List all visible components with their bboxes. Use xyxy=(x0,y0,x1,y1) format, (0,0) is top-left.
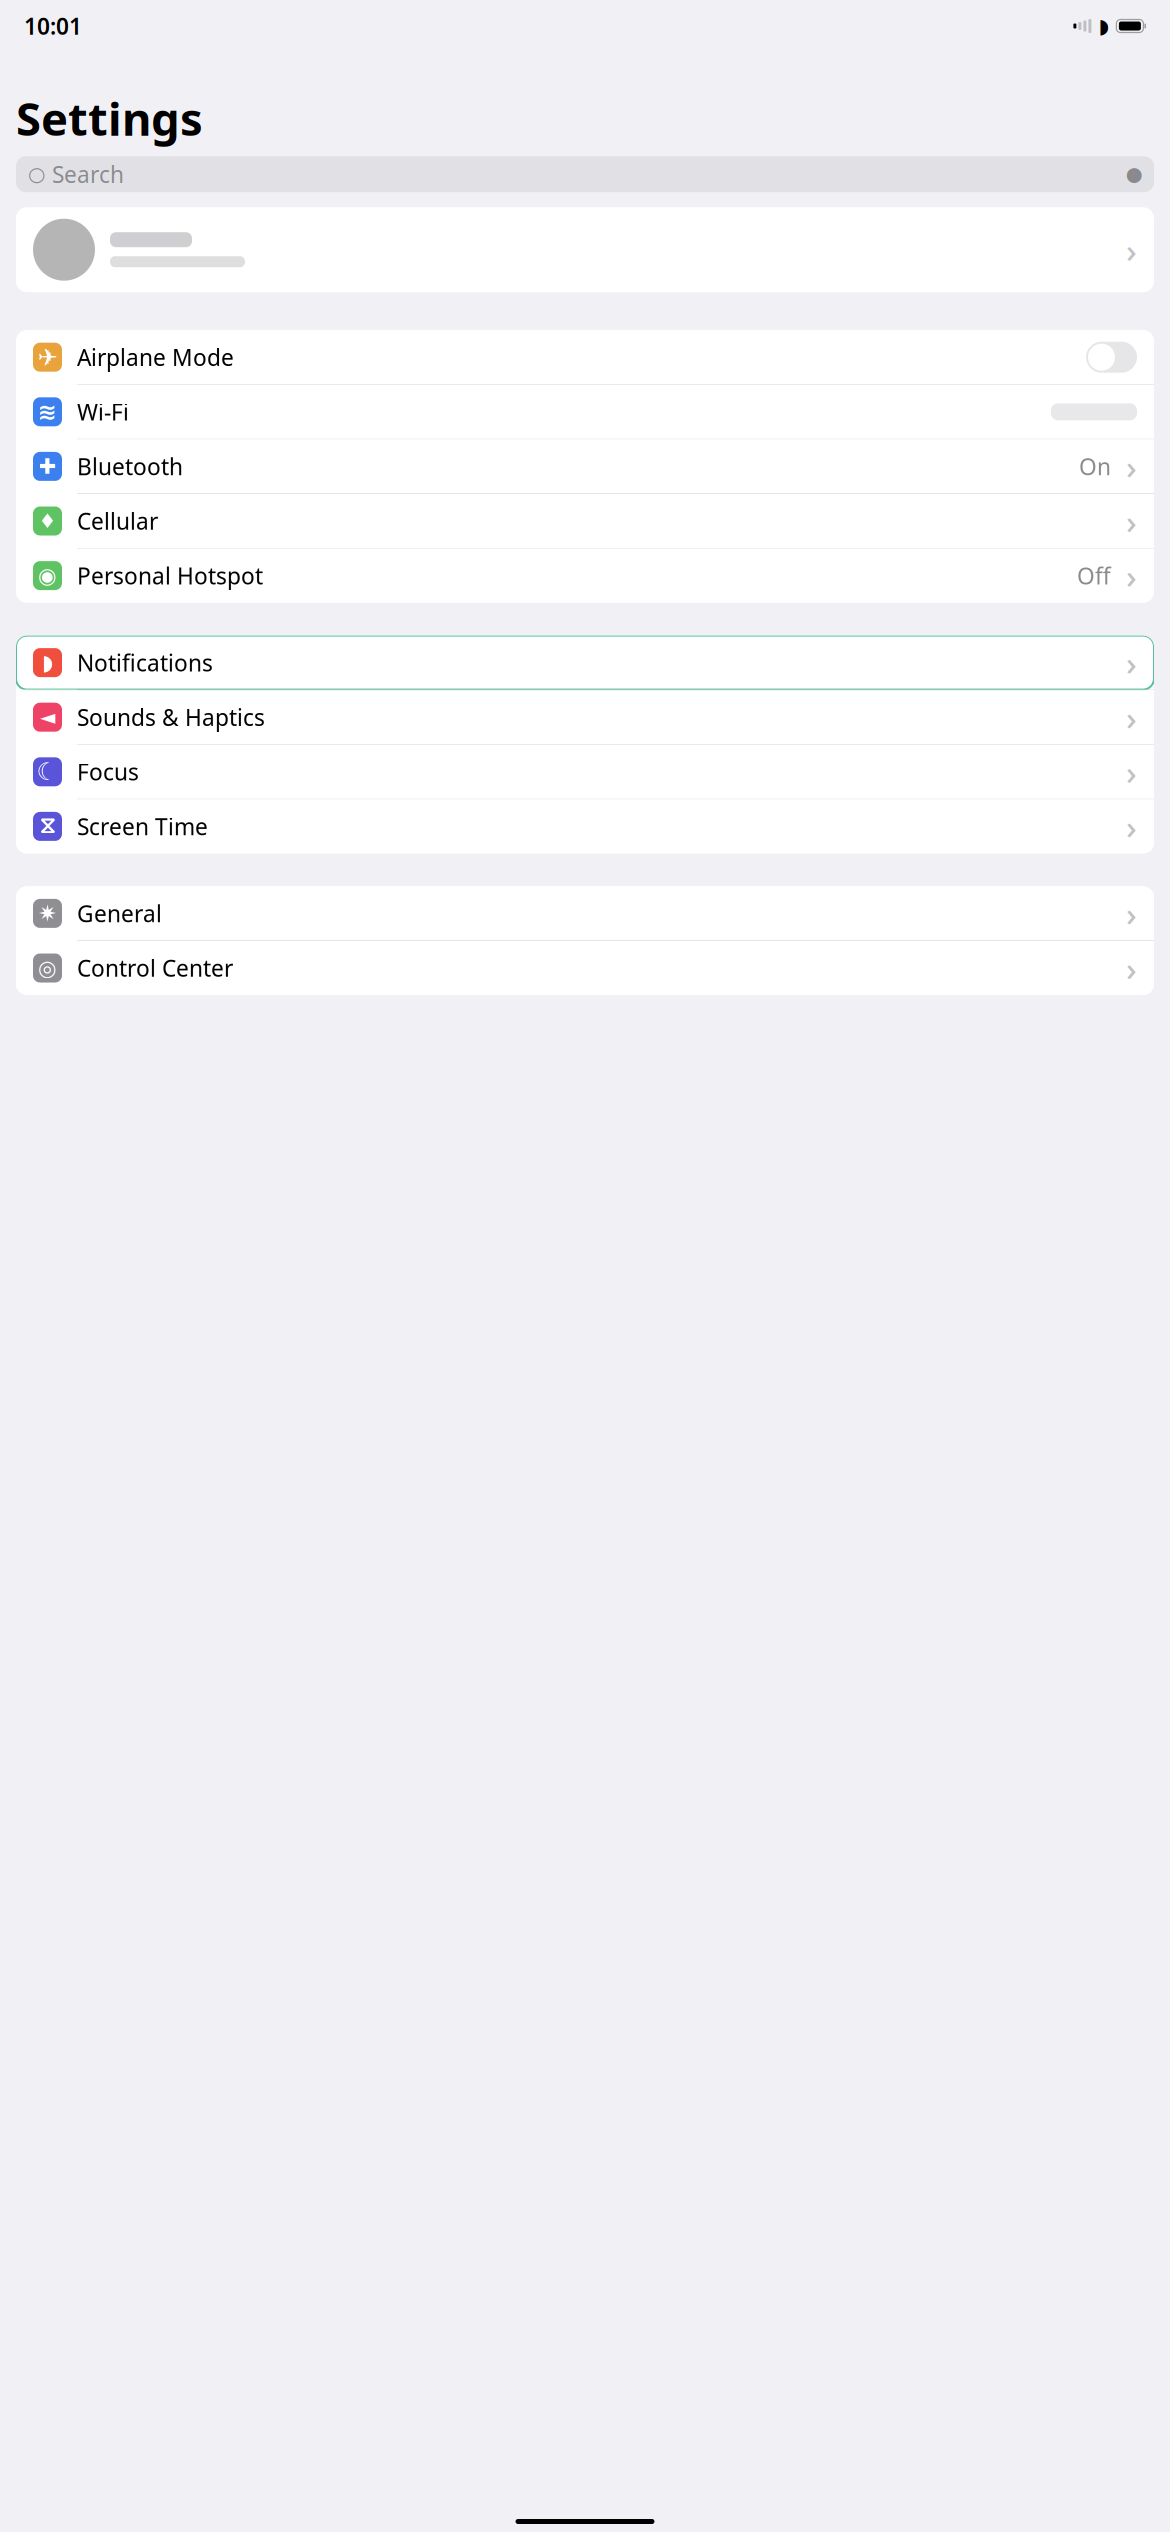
staticText: Focus xyxy=(77,757,139,787)
staticText: Bluetooth xyxy=(77,451,183,481)
staticText: ⬤ xyxy=(1126,166,1142,182)
staticText: Off xyxy=(1077,560,1111,591)
staticText: Screen Time xyxy=(77,811,208,841)
button[interactable]: ✷ xyxy=(16,886,1154,940)
staticText: ♦ xyxy=(38,510,56,532)
staticText: ◉ xyxy=(38,563,57,588)
staticText: › xyxy=(1126,499,1137,543)
staticText: Personal Hotspot xyxy=(77,560,263,591)
button[interactable]: ◄ xyxy=(16,690,1154,744)
staticText: ☾ xyxy=(36,758,58,785)
button[interactable]: ✚ xyxy=(16,439,1154,493)
staticText: › xyxy=(1126,553,1137,598)
staticText: 10:01 xyxy=(24,11,82,41)
button[interactable]: › xyxy=(16,207,1154,292)
staticText: Sounds & Haptics xyxy=(77,702,265,732)
staticText: Wi-Fi xyxy=(77,397,129,427)
staticText: ◄ xyxy=(40,706,55,729)
staticText: › xyxy=(1126,891,1137,936)
staticText: › xyxy=(1126,750,1137,794)
staticText: ○ xyxy=(28,163,45,186)
button[interactable]: ⧖ xyxy=(16,799,1154,853)
button[interactable]: ✈ xyxy=(16,330,1154,384)
staticText: ⧖ xyxy=(39,815,55,837)
staticText: › xyxy=(1126,444,1137,489)
staticText: General xyxy=(77,898,162,928)
staticText: ✚ xyxy=(38,454,56,478)
staticText: ≋ xyxy=(38,399,57,425)
staticText: ◗ xyxy=(1098,15,1109,37)
staticText: Settings xyxy=(16,88,203,148)
staticText: ◗ xyxy=(42,650,53,675)
button[interactable]: ◎ xyxy=(16,941,1154,995)
staticText: › xyxy=(1126,228,1137,272)
staticText: On xyxy=(1079,451,1111,481)
staticText: › xyxy=(1126,804,1137,849)
staticText: › xyxy=(1126,695,1137,739)
staticText: ◎ xyxy=(38,956,57,980)
button[interactable]: ◗ xyxy=(16,636,1154,690)
staticText: ✷ xyxy=(38,900,57,926)
button[interactable]: ≋ xyxy=(16,385,1154,439)
button[interactable]: ◉ xyxy=(16,549,1154,603)
staticText: Control Center xyxy=(77,953,233,983)
staticText: Airplane Mode xyxy=(77,342,234,372)
button[interactable]: ♦ xyxy=(16,494,1154,548)
staticText: ✈ xyxy=(37,344,57,371)
staticText: Search xyxy=(52,159,124,189)
staticText: › xyxy=(1126,640,1137,685)
staticText: Notifications xyxy=(77,647,213,678)
staticText: Cellular xyxy=(77,506,158,536)
button[interactable]: ○ xyxy=(16,156,1154,192)
button[interactable]: ☾ xyxy=(16,745,1154,799)
staticText: › xyxy=(1126,946,1137,990)
